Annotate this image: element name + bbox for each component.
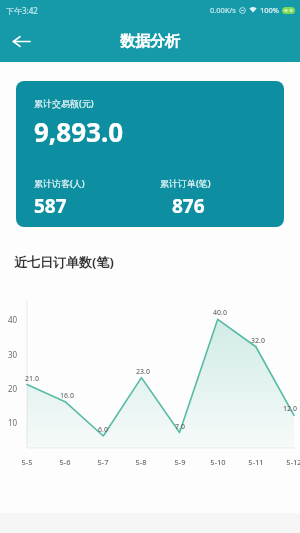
staticText: 5-10 [207,457,229,467]
staticText: 30 [8,349,18,360]
staticText: 9,893.0 [34,114,124,149]
staticText: 10 [8,417,18,428]
staticText: 40.0 [213,308,227,318]
button[interactable]: 累计交易额(元) [16,81,284,227]
staticText: 数据分析 [120,32,180,51]
staticText: 5-9 [169,457,191,467]
staticText: 5-5 [16,457,38,467]
staticText: 21.0 [25,374,39,384]
staticText: 5-6 [54,457,76,467]
staticText: 100% [260,5,280,15]
staticText: 下午3:42 [6,5,38,16]
button[interactable]: Back [0,20,42,62]
staticText: 5-8 [130,457,152,467]
staticText: 0.00K/s [210,5,236,15]
staticText: 587 [34,193,67,219]
staticText: 20 [8,383,18,394]
staticText: 5-12 [283,457,300,467]
staticText: 累计订单(笔) [160,177,211,189]
staticText: 12.0 [283,404,297,414]
staticText: 近七日订单数(笔) [14,253,114,271]
staticText: 7.0 [175,422,185,432]
staticText: 累计访客(人) [34,177,85,189]
staticText: 23.0 [136,367,150,377]
staticText: 876 [172,193,205,219]
staticText: 累计交易额(元) [34,97,94,109]
staticText: 16.0 [60,391,74,401]
staticText: 6.0 [98,425,108,435]
staticText: 32.0 [251,336,265,346]
staticText: 5-7 [92,457,114,467]
staticText: 40 [8,314,18,325]
staticText: 5-11 [245,457,267,467]
